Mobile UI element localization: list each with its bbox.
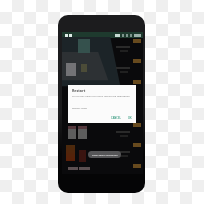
staticText: To run this utility you must restart the… (72, 94, 130, 97)
staticText: Restart now? (72, 106, 88, 109)
staticText: swap agent succeeded (92, 153, 118, 156)
staticText: OK (128, 116, 132, 120)
button[interactable]: OK (126, 115, 134, 121)
staticText: Restart (72, 88, 86, 93)
button[interactable]: swap agent succeeded (88, 151, 121, 158)
button[interactable]: CANCEL (109, 115, 123, 121)
staticText: CANCEL (111, 116, 121, 120)
